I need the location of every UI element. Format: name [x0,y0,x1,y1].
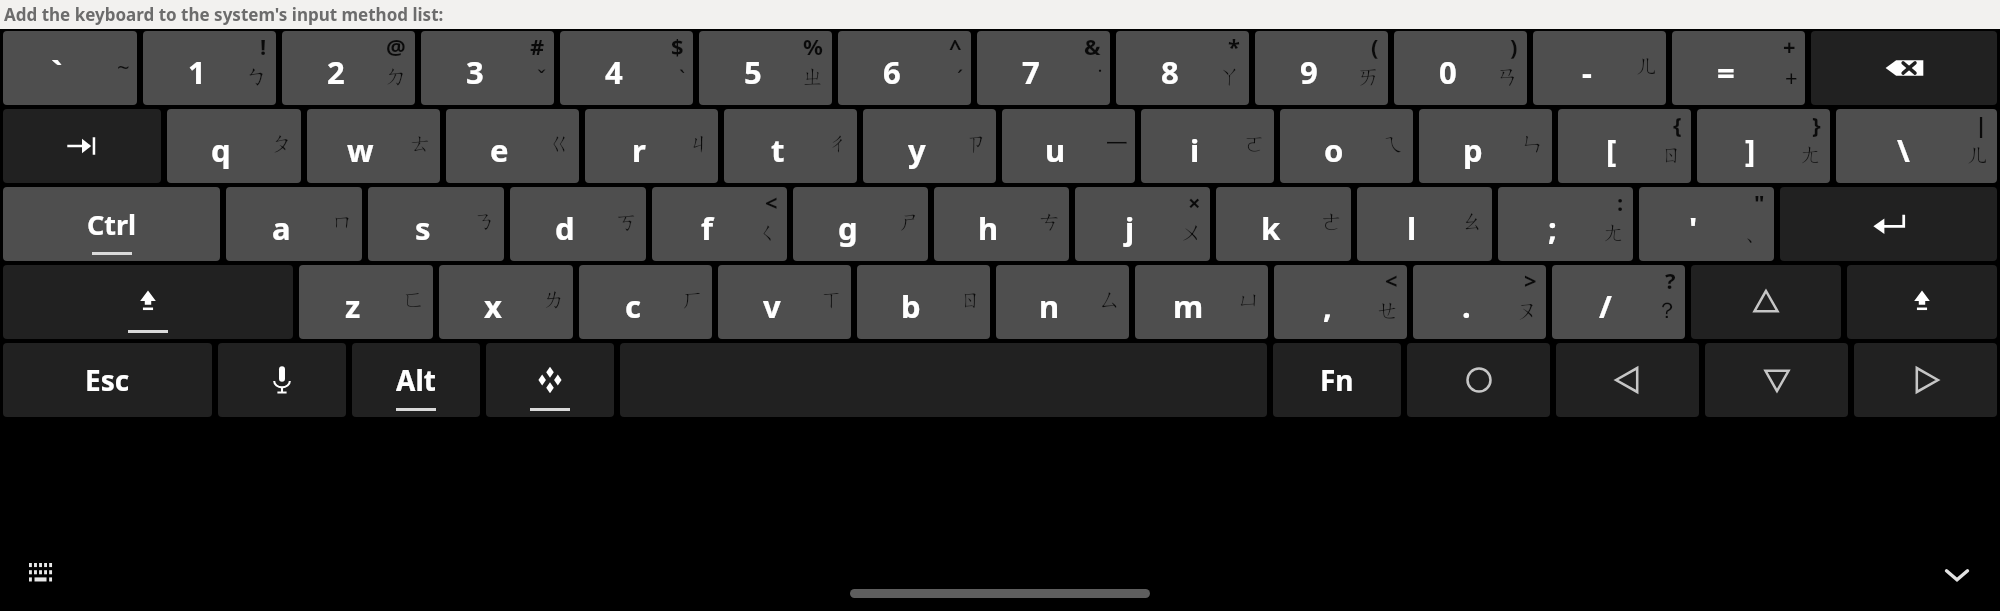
button[interactable]: / [1552,265,1685,339]
button[interactable]: 4 [560,31,693,105]
button[interactable]: c [579,265,712,339]
button[interactable]: Shift [1847,265,1997,339]
staticText: q [211,129,231,171]
button[interactable]: Shift [3,265,293,339]
button[interactable]: h [934,187,1069,261]
button[interactable]: , [1274,265,1407,339]
staticText: u [1045,129,1066,171]
staticText: ㄒ [821,286,844,314]
button[interactable]: 5 [699,31,832,105]
staticText: 5 [744,51,762,93]
button[interactable]: g [793,187,928,261]
button[interactable]: 6 [838,31,971,105]
button[interactable]: ; [1498,187,1633,261]
staticText: ㄋ [474,208,497,236]
button[interactable]: b [857,265,990,339]
button[interactable]: Switch keyboard [20,554,62,596]
button[interactable]: = [1672,31,1805,105]
button[interactable]: \ [1836,109,1997,183]
staticText: 2 [327,51,345,93]
button[interactable]: f [652,187,787,261]
button[interactable]: Left [1556,343,1699,417]
button[interactable]: u [1002,109,1135,183]
button[interactable]: 0 [1394,31,1527,105]
button[interactable]: Esc [3,343,212,417]
button[interactable]: 9 [1255,31,1388,105]
button[interactable]: x [439,265,573,339]
staticText: x [484,285,502,327]
staticText: d [555,207,575,249]
staticText: f [701,207,713,249]
button[interactable]: s [368,187,504,261]
staticText: ㄎ [616,208,639,236]
staticText: ㄘ [1039,208,1062,236]
button[interactable]: ' [1639,187,1774,261]
button[interactable]: n [996,265,1129,339]
button[interactable]: Right [1854,343,1997,417]
button[interactable]: Up [1691,265,1841,339]
button[interactable]: j [1075,187,1210,261]
button[interactable]: 7 [977,31,1110,105]
button[interactable]: ] [1697,109,1830,183]
button[interactable]: Voice input [218,343,346,417]
staticText: # [530,31,545,61]
button[interactable]: 2 [282,31,415,105]
button[interactable]: z [299,265,433,339]
staticText: , [1323,285,1332,327]
staticText: . [1462,285,1471,327]
button[interactable]: i [1141,109,1274,183]
button[interactable]: Alt [352,343,480,417]
button[interactable]: a [226,187,362,261]
staticText: ㄑ [757,219,780,247]
button[interactable]: Backspace [1811,31,1997,105]
staticText: ？ [1656,297,1678,325]
staticText: l [1407,207,1417,249]
staticText: ' [1689,207,1698,249]
staticText: \ [1897,129,1910,171]
button[interactable]: o [1280,109,1413,183]
staticText: * [1228,31,1240,61]
button[interactable]: v [718,265,851,339]
button[interactable]: Fn [1273,343,1401,417]
button[interactable]: p [1419,109,1552,183]
button[interactable]: Home [1407,343,1550,417]
button[interactable]: [ [1558,109,1691,183]
button[interactable]: 3 [421,31,554,105]
staticText: / [1599,285,1612,327]
staticText: ㄣ [1522,130,1545,158]
button[interactable]: e [446,109,579,183]
staticText: ㄦ [1967,141,1990,169]
staticText: ㄤ [1603,219,1626,247]
button[interactable]: w [307,109,440,183]
button[interactable]: q [167,109,301,183]
staticText: g [838,207,858,249]
staticText: ] [1745,129,1756,171]
button[interactable]: Tab [3,109,161,183]
button[interactable]: Ctrl [3,187,220,261]
button[interactable]: 1 [143,31,276,105]
staticText: ㄐ [688,130,711,158]
staticText: ! [260,31,267,61]
button[interactable]: 8 [1116,31,1249,105]
button[interactable]: l [1357,187,1492,261]
button[interactable]: m [1135,265,1268,339]
button[interactable]: Enter [1780,187,1997,261]
button[interactable]: k [1216,187,1351,261]
button[interactable]: ` [3,31,137,105]
button[interactable]: Switch language [486,343,614,417]
staticText: { [1673,109,1682,139]
staticText: Esc [85,361,130,399]
button[interactable]: d [510,187,646,261]
staticText: r [632,129,646,171]
button[interactable]: t [724,109,857,183]
staticText: z [345,285,361,327]
staticText: b [901,285,921,327]
button[interactable]: . [1413,265,1546,339]
button[interactable]: r [585,109,718,183]
button[interactable]: y [863,109,996,183]
button[interactable]: Hide keyboard [1934,552,1980,598]
button[interactable]: - [1533,31,1666,105]
staticText: = [1717,51,1735,93]
button[interactable]: Down [1705,343,1848,417]
